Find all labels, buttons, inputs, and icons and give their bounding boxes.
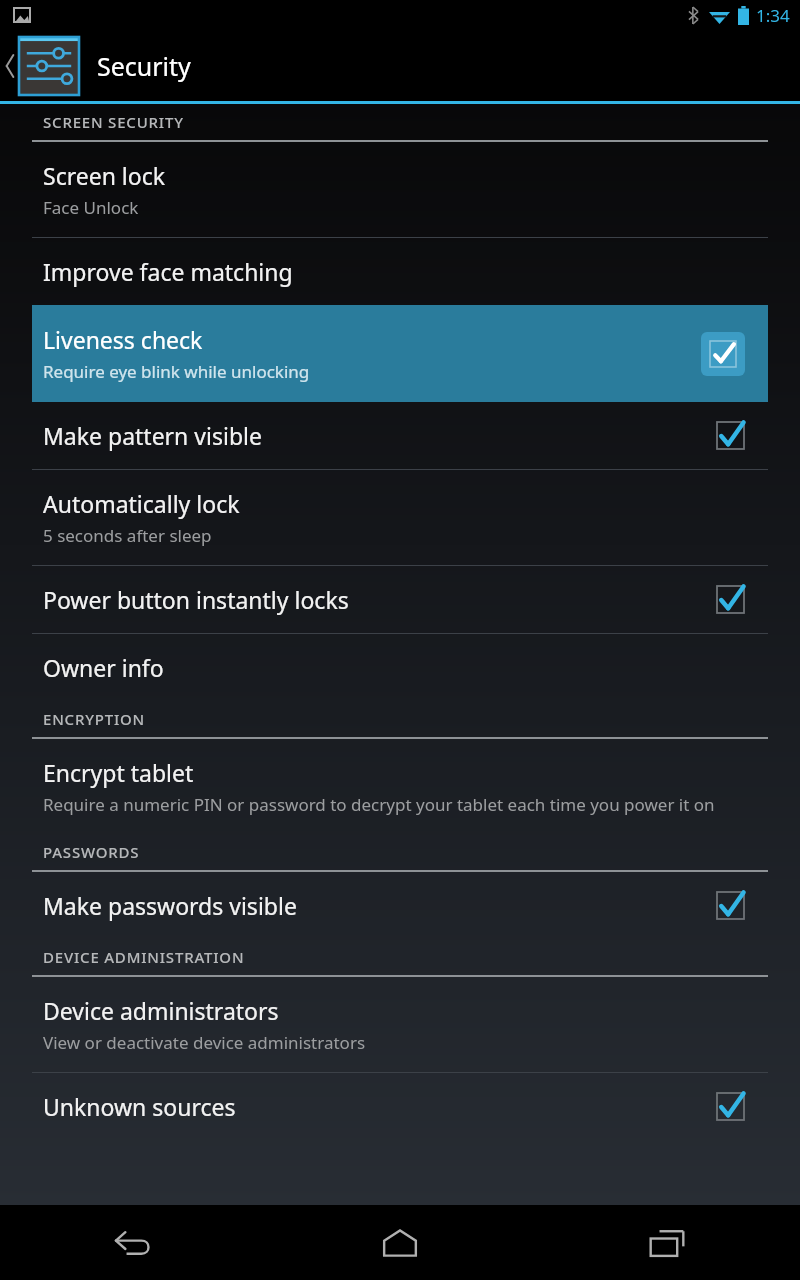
button[interactable]: Make pattern visible [0, 402, 800, 469]
staticText: ENCRYPTION [43, 709, 146, 729]
button[interactable]: Navigate up [0, 30, 800, 101]
staticText: Liveness check [43, 324, 203, 355]
button[interactable]: Encrypt tablet [0, 739, 800, 834]
button[interactable]: Power button instantly locks [0, 566, 800, 633]
button[interactable]: Automatically lock [0, 470, 800, 565]
staticText: Make pattern visible [43, 420, 262, 451]
staticText: Make passwords visible [43, 890, 297, 921]
staticText: Encrypt tablet [43, 757, 194, 788]
button[interactable]: Home [266, 1205, 533, 1280]
button[interactable]: Device administrators [0, 977, 800, 1072]
button[interactable]: Screen lock [0, 142, 800, 237]
button[interactable]: Back [0, 1205, 266, 1280]
staticText: Improve face matching [43, 256, 293, 287]
button[interactable]: Unknown sources [0, 1073, 800, 1140]
staticText: Automatically lock [43, 488, 240, 519]
staticText: SCREEN SECURITY [43, 112, 184, 132]
staticText: Owner info [43, 652, 164, 683]
staticText: Device administrators [43, 995, 279, 1026]
staticText: Require eye blink while unlocking [43, 360, 310, 383]
staticText: View or deactivate device administrators [43, 1031, 366, 1054]
staticText: DEVICE ADMINISTRATION [43, 947, 245, 967]
staticText: Screen lock [43, 160, 166, 191]
button[interactable]: Improve face matching [0, 238, 800, 305]
button[interactable]: Liveness check [32, 305, 768, 402]
staticText: 5 seconds after sleep [43, 524, 212, 547]
button[interactable]: Make passwords visible [0, 872, 800, 939]
staticText: Unknown sources [43, 1091, 236, 1122]
button[interactable]: Owner info [0, 634, 800, 701]
button[interactable]: Recent apps [533, 1205, 800, 1280]
staticText: Face Unlock [43, 196, 139, 219]
staticText: PASSWORDS [43, 842, 140, 862]
staticText: 1:34 [756, 4, 790, 27]
staticText: Power button instantly locks [43, 584, 349, 615]
staticText: Require a numeric PIN or password to dec… [43, 793, 715, 816]
staticText: Security [97, 49, 191, 83]
